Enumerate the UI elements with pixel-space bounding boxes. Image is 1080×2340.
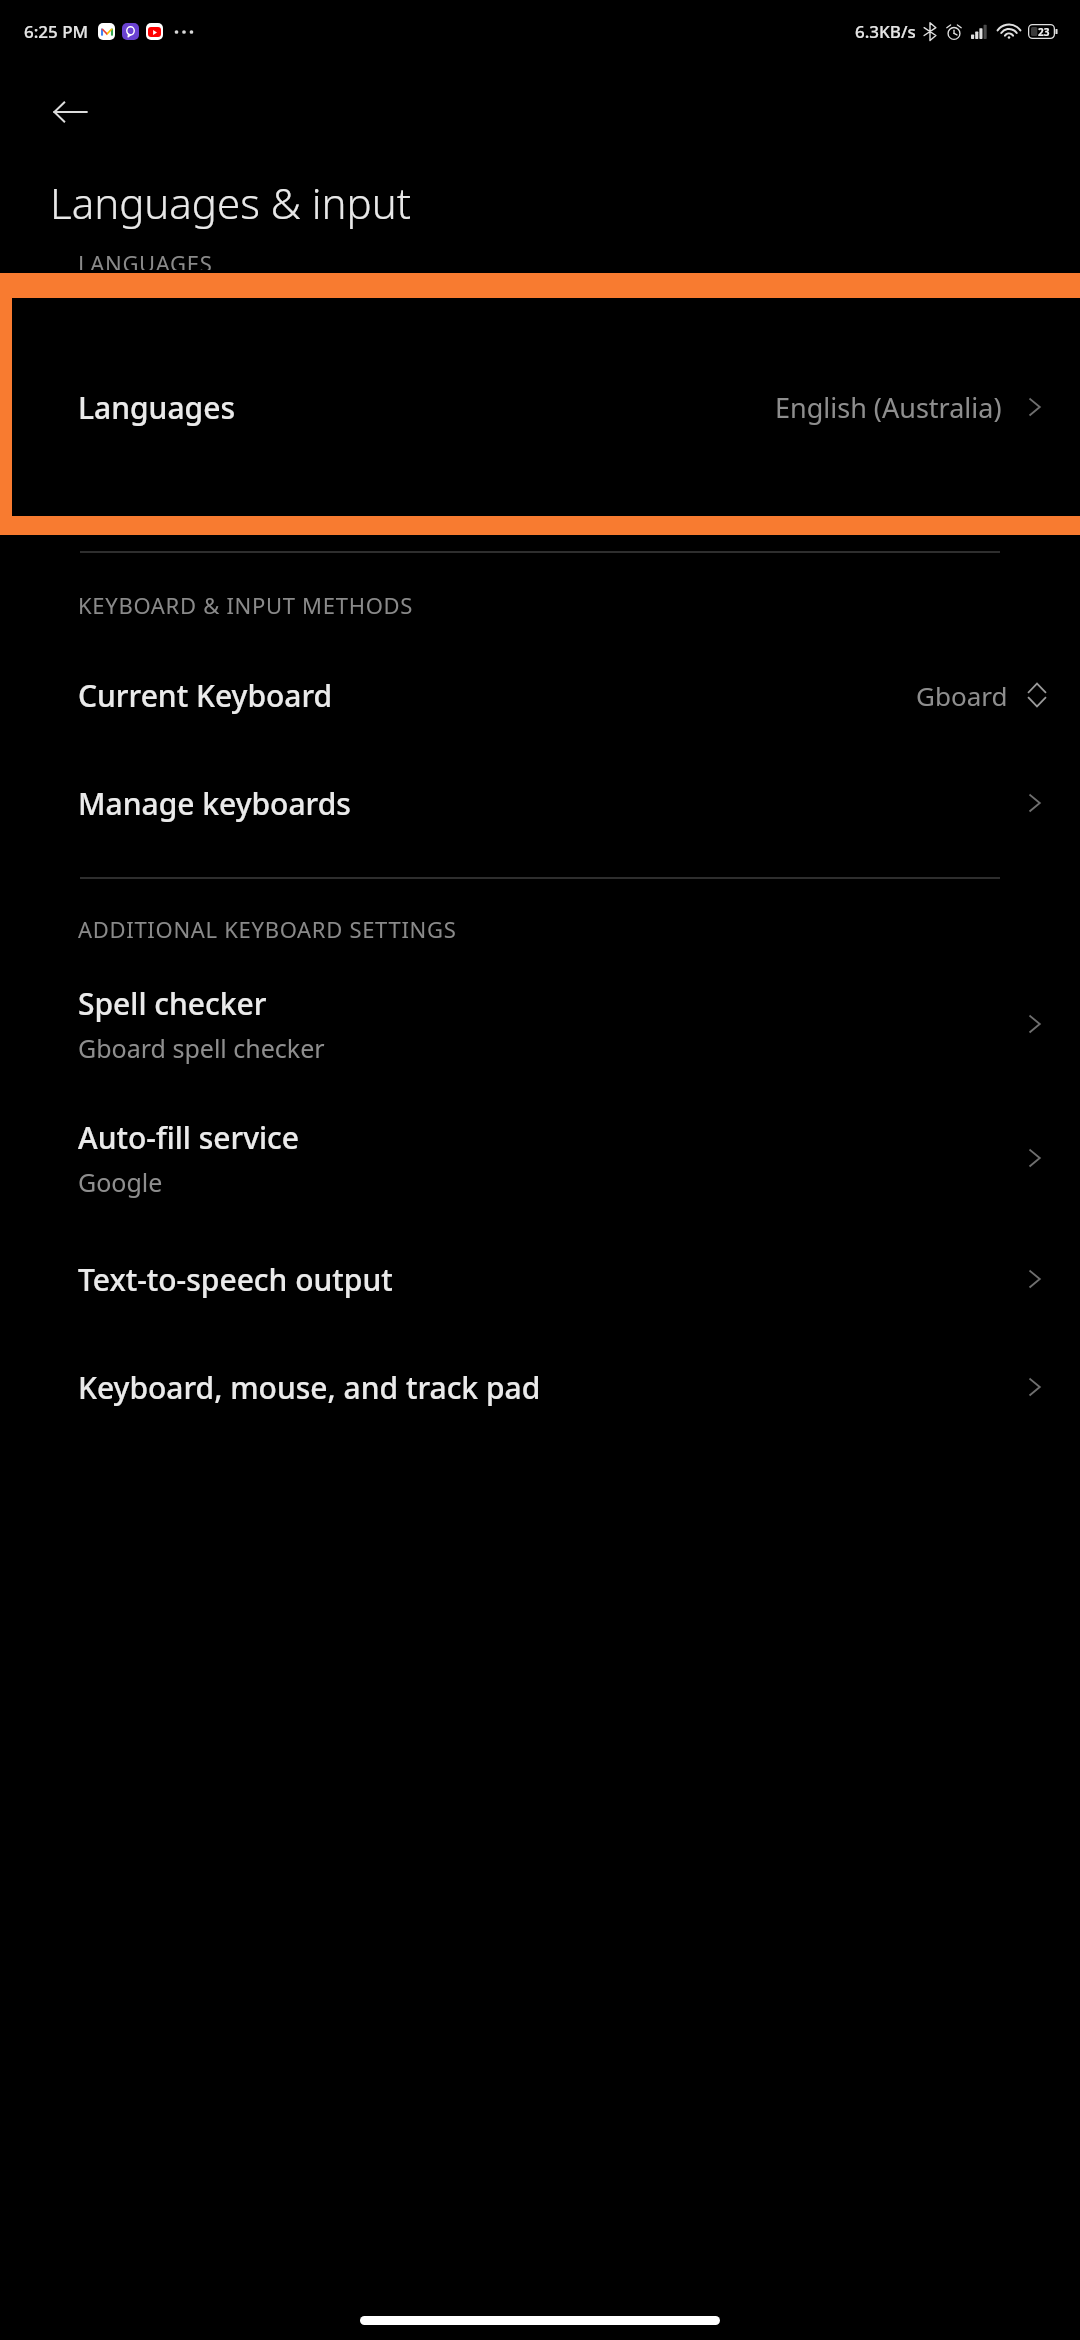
staticText: Gboard spell checker [78,1031,325,1065]
staticText: Languages & input [50,174,411,231]
button[interactable]: Current Keyboard [0,641,1080,749]
staticText: 6.3KB/s [855,20,916,43]
button[interactable]: Manage keyboards [0,749,1080,857]
staticText: Spell checker [78,983,267,1024]
staticText: Current Keyboard [78,675,333,716]
staticText: English (Australia) [775,389,1002,426]
staticText: Gboard [916,678,1008,713]
staticText: KEYBOARD & INPUT METHODS [78,590,414,620]
other: Bluetooth [923,22,937,41]
staticText: ADDITIONAL KEYBOARD SETTINGS [78,914,457,944]
staticText: Text-to-speech output [78,1259,393,1300]
staticText: Google [78,1165,163,1199]
staticText: 23 [1038,25,1050,39]
button[interactable]: Text-to-speech output [0,1225,1080,1333]
staticText: Keyboard, mouse, and track pad [78,1367,541,1408]
other: Alarm [945,23,963,41]
button[interactable]: Keyboard, mouse, and track pad [0,1333,1080,1441]
staticText: Manage keyboards [78,783,351,824]
other: Battery 23 percent [1028,24,1058,39]
button[interactable]: Languages [0,298,1080,516]
staticText: Languages [78,387,235,428]
staticText: 6:25 PM [24,20,89,43]
other: Cellular signal [971,24,990,39]
button[interactable]: Back [44,86,96,138]
button[interactable]: Auto-fill service [0,1091,1080,1225]
staticText: Auto-fill service [78,1117,300,1158]
button[interactable]: Spell checker [0,957,1080,1091]
staticText: LANGUAGES [78,248,213,270]
other: Wi-Fi [999,24,1019,39]
